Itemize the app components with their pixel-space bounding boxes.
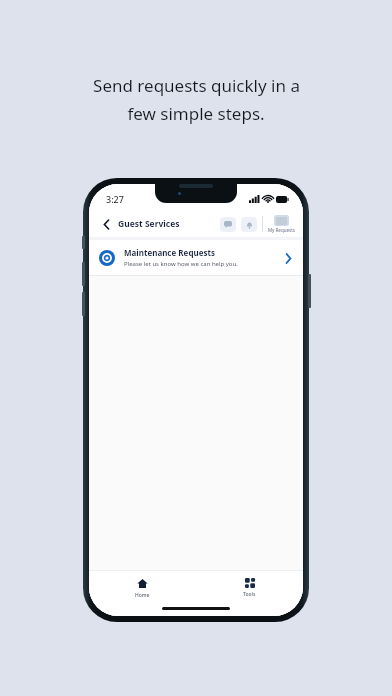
button[interactable]: Messages: [220, 217, 236, 232]
staticText: Send requests quickly in a: [93, 74, 300, 97]
button[interactable]: Back: [100, 218, 112, 230]
button[interactable]: Notifications: [241, 217, 257, 232]
button[interactable]: Maintenance Requests: [89, 240, 303, 275]
staticText: Please let us know how we can help you.: [124, 260, 238, 268]
button[interactable]: Tools: [196, 571, 303, 605]
button[interactable]: Home: [89, 571, 196, 605]
staticText: Home: [135, 592, 150, 599]
staticText: Tools: [243, 591, 256, 598]
staticText: 3:27: [106, 193, 124, 205]
staticText: Maintenance Requests: [124, 247, 215, 258]
button[interactable]: My Requests: [268, 215, 295, 233]
other: Open: [282, 252, 294, 264]
staticText: Guest Services: [118, 218, 180, 230]
staticText: My Requests: [268, 227, 295, 233]
staticText: few simple steps.: [127, 102, 265, 125]
